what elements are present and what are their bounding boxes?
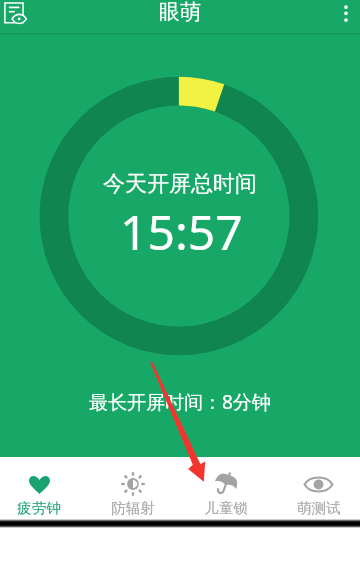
staticText: 萌测试: [297, 499, 341, 517]
staticText: 防辐射: [111, 499, 155, 517]
button[interactable]: More options: [327, 0, 360, 33]
button[interactable]: Usage report: [0, 0, 33, 33]
staticText: 儿童锁: [204, 499, 248, 517]
staticText: 眼萌: [159, 0, 201, 25]
button[interactable]: 萌测试: [272, 457, 360, 517]
button[interactable]: 疲劳钟: [0, 457, 86, 517]
button[interactable]: 儿童锁: [179, 457, 272, 517]
staticText: 最长开屏时间：8分钟: [89, 389, 271, 415]
button[interactable]: 防辐射: [86, 457, 179, 517]
staticText: 今天开屏总时间: [103, 170, 257, 198]
staticText: 15:57: [120, 199, 243, 264]
staticText: 疲劳钟: [17, 499, 61, 517]
